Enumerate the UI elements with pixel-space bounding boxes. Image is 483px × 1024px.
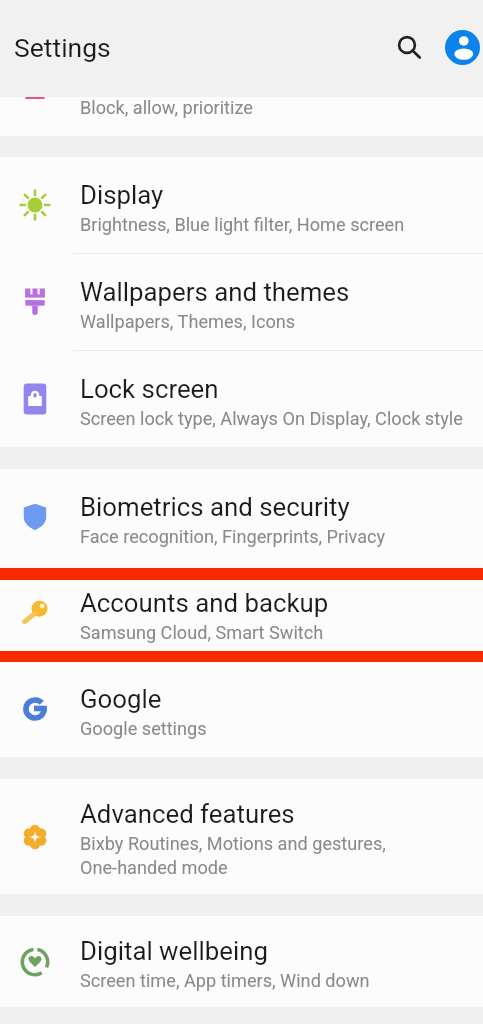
staticText: Google bbox=[80, 684, 162, 714]
button[interactable]: Wallpapers and themes bbox=[0, 254, 483, 350]
staticText: Lock screen bbox=[80, 374, 219, 404]
button[interactable]: Lock screen bbox=[0, 351, 483, 447]
button[interactable]: Notifications bbox=[0, 40, 483, 136]
button[interactable]: Digital wellbeing bbox=[0, 916, 483, 1007]
button[interactable]: Accounts and backup bbox=[0, 565, 483, 661]
staticText: Digital wellbeing bbox=[80, 936, 268, 966]
button[interactable]: Search bbox=[383, 21, 431, 69]
staticText: Wallpapers, Themes, Icons bbox=[80, 311, 296, 332]
button[interactable]: Account bbox=[438, 23, 483, 71]
staticText: Block, allow, prioritize bbox=[80, 97, 253, 118]
staticText: Screen lock type, Always On Display, Clo… bbox=[80, 408, 463, 429]
staticText: Accounts and backup bbox=[80, 588, 329, 618]
staticText: Samsung Cloud, Smart Switch bbox=[80, 622, 324, 643]
button[interactable]: Advanced features bbox=[0, 779, 483, 894]
button[interactable]: Google bbox=[0, 661, 483, 757]
staticText: Wallpapers and themes bbox=[80, 277, 350, 307]
staticText: Display bbox=[80, 180, 164, 210]
button[interactable]: Biometrics and security bbox=[0, 469, 483, 565]
staticText: Biometrics and security bbox=[80, 492, 350, 522]
staticText: Screen time, App timers, Wind down bbox=[80, 970, 370, 991]
staticText: Settings bbox=[14, 32, 111, 63]
staticText: Face recognition, Fingerprints, Privacy bbox=[80, 526, 386, 547]
button[interactable]: Display bbox=[0, 157, 483, 253]
staticText: Google settings bbox=[80, 718, 207, 739]
staticText: Advanced features bbox=[80, 799, 295, 829]
staticText: Brightness, Blue light filter, Home scre… bbox=[80, 214, 405, 235]
staticText: Bixby Routines, Motions and gestures, On… bbox=[80, 833, 386, 878]
